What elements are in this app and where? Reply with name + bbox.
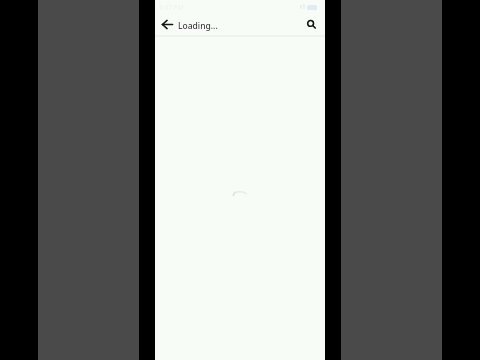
button[interactable]: Back	[157, 14, 177, 34]
staticText: Loading...	[178, 20, 218, 32]
button[interactable]: Search	[301, 14, 321, 34]
